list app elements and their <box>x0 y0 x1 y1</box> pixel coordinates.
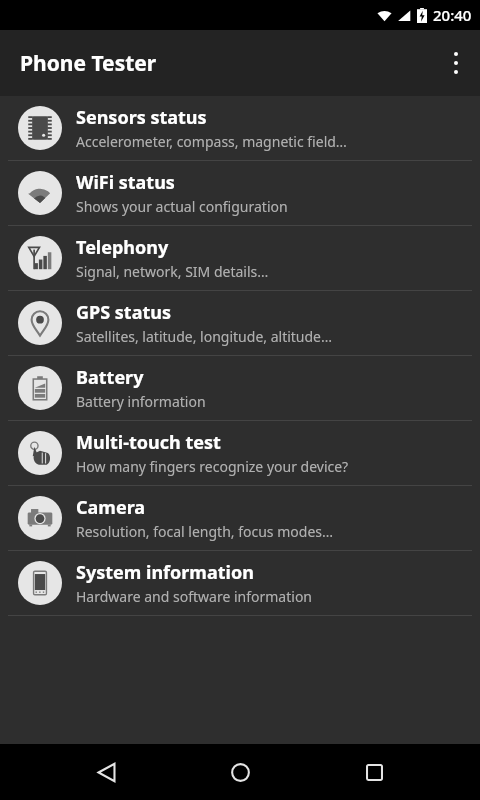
button[interactable]: Recents <box>346 744 402 800</box>
button[interactable]: Battery <box>0 356 480 420</box>
button[interactable]: Home <box>212 744 268 800</box>
button[interactable]: Back <box>78 744 134 800</box>
staticText: GPS status <box>76 300 171 325</box>
staticText: Signal, network, SIM details… <box>76 262 269 281</box>
staticText: 20:40 <box>433 5 472 25</box>
staticText: System information <box>76 560 254 585</box>
staticText: How many fingers recognize your device? <box>76 457 349 476</box>
staticText: Phone Tester <box>20 49 157 78</box>
button[interactable]: Multi-touch test <box>0 421 480 485</box>
button[interactable]: Sensors status <box>0 96 480 160</box>
staticText: Hardware and software information <box>76 587 312 606</box>
staticText: Multi-touch test <box>76 430 221 455</box>
button[interactable]: Telephony <box>0 226 480 290</box>
staticText: Satellites, latitude, longitude, altitud… <box>76 327 333 346</box>
staticText: Telephony <box>76 235 169 260</box>
button[interactable]: GPS status <box>0 291 480 355</box>
button[interactable]: WiFi status <box>0 161 480 225</box>
staticText: Battery <box>76 365 144 390</box>
staticText: Camera <box>76 495 146 520</box>
staticText: Sensors status <box>76 105 207 130</box>
staticText: Shows your actual configuration <box>76 197 288 216</box>
staticText: WiFi status <box>76 170 175 195</box>
staticText: Resolution, focal length, focus modes… <box>76 522 334 541</box>
button[interactable]: More options <box>432 39 480 87</box>
button[interactable]: System information <box>0 551 480 615</box>
staticText: Battery information <box>76 392 206 411</box>
button[interactable]: Camera <box>0 486 480 550</box>
staticText: Accelerometer, compass, magnetic field… <box>76 132 347 151</box>
